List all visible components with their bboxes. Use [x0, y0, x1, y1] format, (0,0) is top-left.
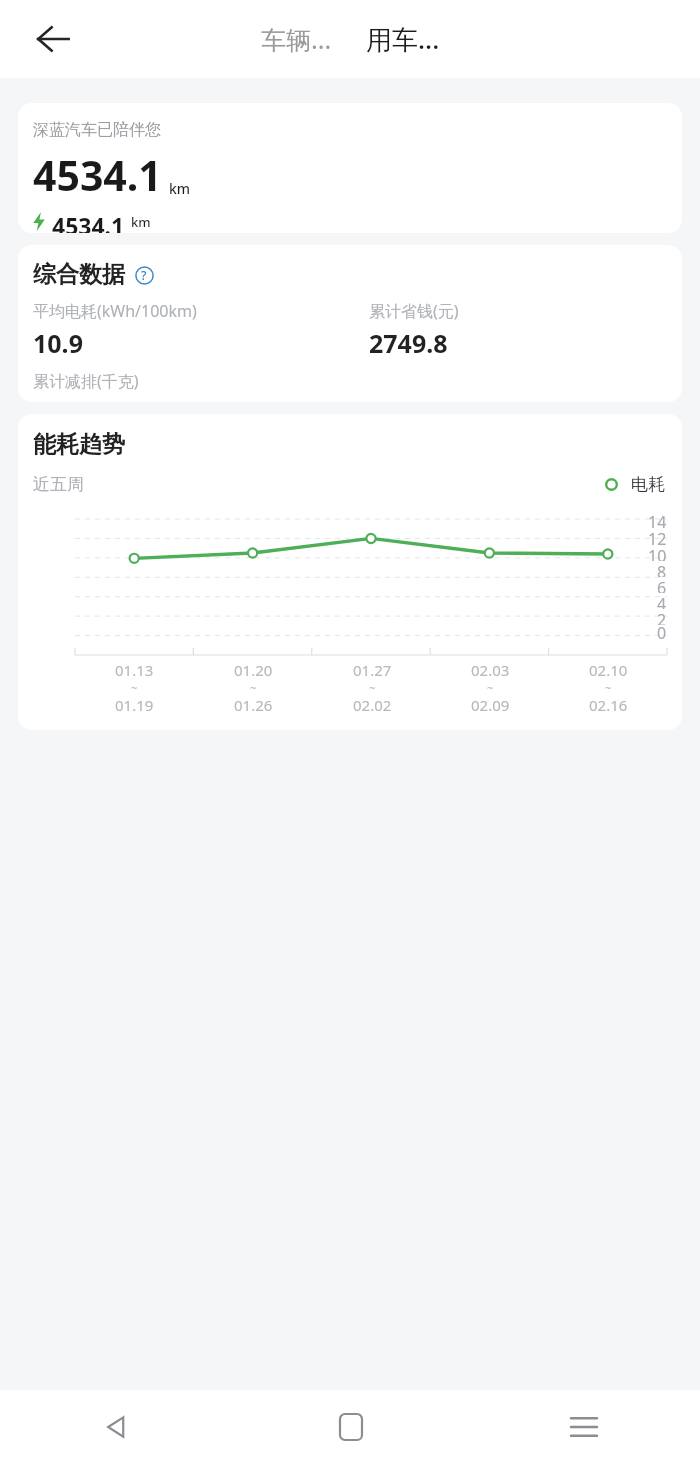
staticText: 02.10 — [589, 660, 628, 680]
staticText: 10 — [648, 545, 667, 561]
staticText: 2749.8 — [369, 326, 448, 360]
button[interactable]: 能耗趋势 — [18, 414, 682, 730]
staticText: ~ — [605, 680, 612, 695]
staticText: 平均电耗(kWh/100km) — [33, 300, 197, 322]
staticText: 用车... — [366, 21, 440, 57]
staticText: 02.02 — [353, 695, 392, 713]
button[interactable]: 电耗 — [603, 472, 667, 497]
staticText: 0 — [657, 622, 667, 644]
staticText: ~ — [131, 680, 138, 695]
button[interactable]: Back — [0, 1390, 234, 1464]
button[interactable]: Back — [24, 10, 82, 68]
staticText: ? — [141, 267, 147, 283]
button[interactable]: Recent apps — [467, 1390, 700, 1464]
button[interactable]: 车辆... — [256, 17, 337, 61]
staticText: 6 — [657, 577, 667, 593]
staticText: 01.19 — [115, 695, 154, 713]
staticText: 电耗 — [631, 474, 665, 495]
staticText: 近五周 — [33, 474, 84, 495]
staticText: 累计省钱(元) — [369, 300, 459, 322]
staticText: 综合数据 — [33, 260, 125, 289]
staticText: 4534.1 — [52, 210, 125, 233]
staticText: ~ — [487, 680, 494, 695]
button[interactable]: 综合数据 — [18, 245, 682, 402]
staticText: 8 — [657, 561, 667, 577]
staticText: km — [169, 179, 191, 198]
staticText: 4534.1 — [33, 147, 162, 203]
staticText: 01.20 — [234, 660, 273, 680]
button[interactable]: Home — [234, 1390, 467, 1464]
staticText: 02.09 — [471, 695, 510, 713]
staticText: km — [131, 213, 151, 231]
staticText: 14 — [648, 511, 667, 528]
staticText: ~ — [250, 680, 257, 695]
staticText: 10.9 — [33, 326, 83, 360]
staticText: 02.03 — [471, 660, 510, 680]
staticText: 12 — [648, 528, 667, 545]
staticText: 2 — [657, 609, 667, 625]
staticText: 01.27 — [353, 660, 392, 680]
staticText: 车辆... — [261, 22, 332, 56]
staticText: 累计减排(千克) — [33, 370, 139, 392]
button[interactable]: 用车... — [361, 16, 445, 62]
staticText: 01.13 — [115, 660, 154, 680]
staticText: 4 — [657, 593, 667, 609]
staticText: 01.26 — [234, 695, 273, 713]
staticText: 深蓝汽车已陪伴您 — [33, 120, 161, 140]
button[interactable]: 深蓝汽车已陪伴您 — [18, 103, 682, 233]
button[interactable]: Help — [132, 263, 156, 287]
staticText: ~ — [369, 680, 376, 695]
staticText: 02.16 — [589, 695, 628, 713]
staticText: 能耗趋势 — [33, 430, 125, 459]
